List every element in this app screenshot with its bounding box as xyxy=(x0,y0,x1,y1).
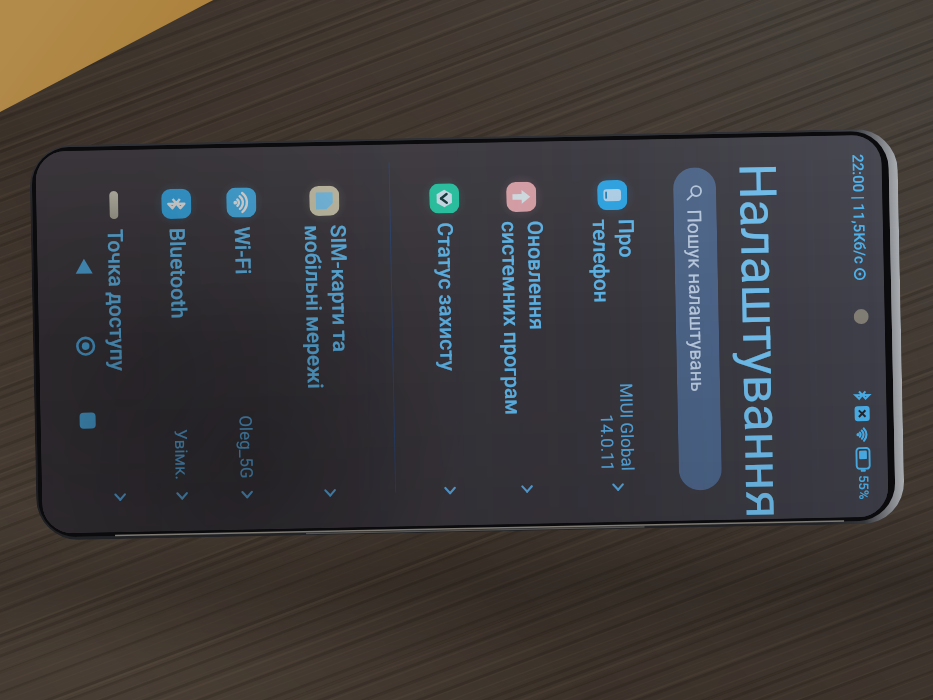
staticText: Увімк. xyxy=(171,429,192,480)
staticText: Налаштування xyxy=(727,163,794,520)
staticText: Оновлення системних програм xyxy=(497,220,551,415)
button[interactable]: Back xyxy=(70,251,99,280)
staticText: Точка доступу xyxy=(102,229,130,371)
button[interactable]: SIM-карти та мобільні мережі xyxy=(279,145,375,529)
staticText: Oleg_5G xyxy=(236,414,257,479)
staticText: SIM-карти та мобільні мережі xyxy=(300,224,353,389)
button[interactable]: Оновлення системних програм xyxy=(476,141,572,525)
staticText: Wi-Fi xyxy=(229,226,255,275)
staticText: Bluetooth xyxy=(164,228,191,319)
button[interactable]: Статус захисту xyxy=(411,143,483,526)
button[interactable]: Bluetooth xyxy=(143,148,215,531)
button[interactable]: Про телефон xyxy=(567,139,663,523)
staticText: Про телефон xyxy=(588,219,639,304)
staticText: MIUI Global 14.0.11 xyxy=(596,383,638,471)
staticText: Статус захисту xyxy=(432,222,460,372)
button[interactable]: Recents xyxy=(73,406,102,435)
button[interactable]: Точка доступу xyxy=(81,149,153,533)
button[interactable]: Home xyxy=(72,331,100,360)
staticText: Пошук налаштувань xyxy=(683,209,709,393)
button[interactable]: Пошук налаштувань xyxy=(673,167,722,491)
staticText: 55% xyxy=(856,475,871,500)
button[interactable]: Wi-Fi xyxy=(208,147,280,530)
staticText: 22:00 | 11,5Кб/c xyxy=(848,154,869,264)
